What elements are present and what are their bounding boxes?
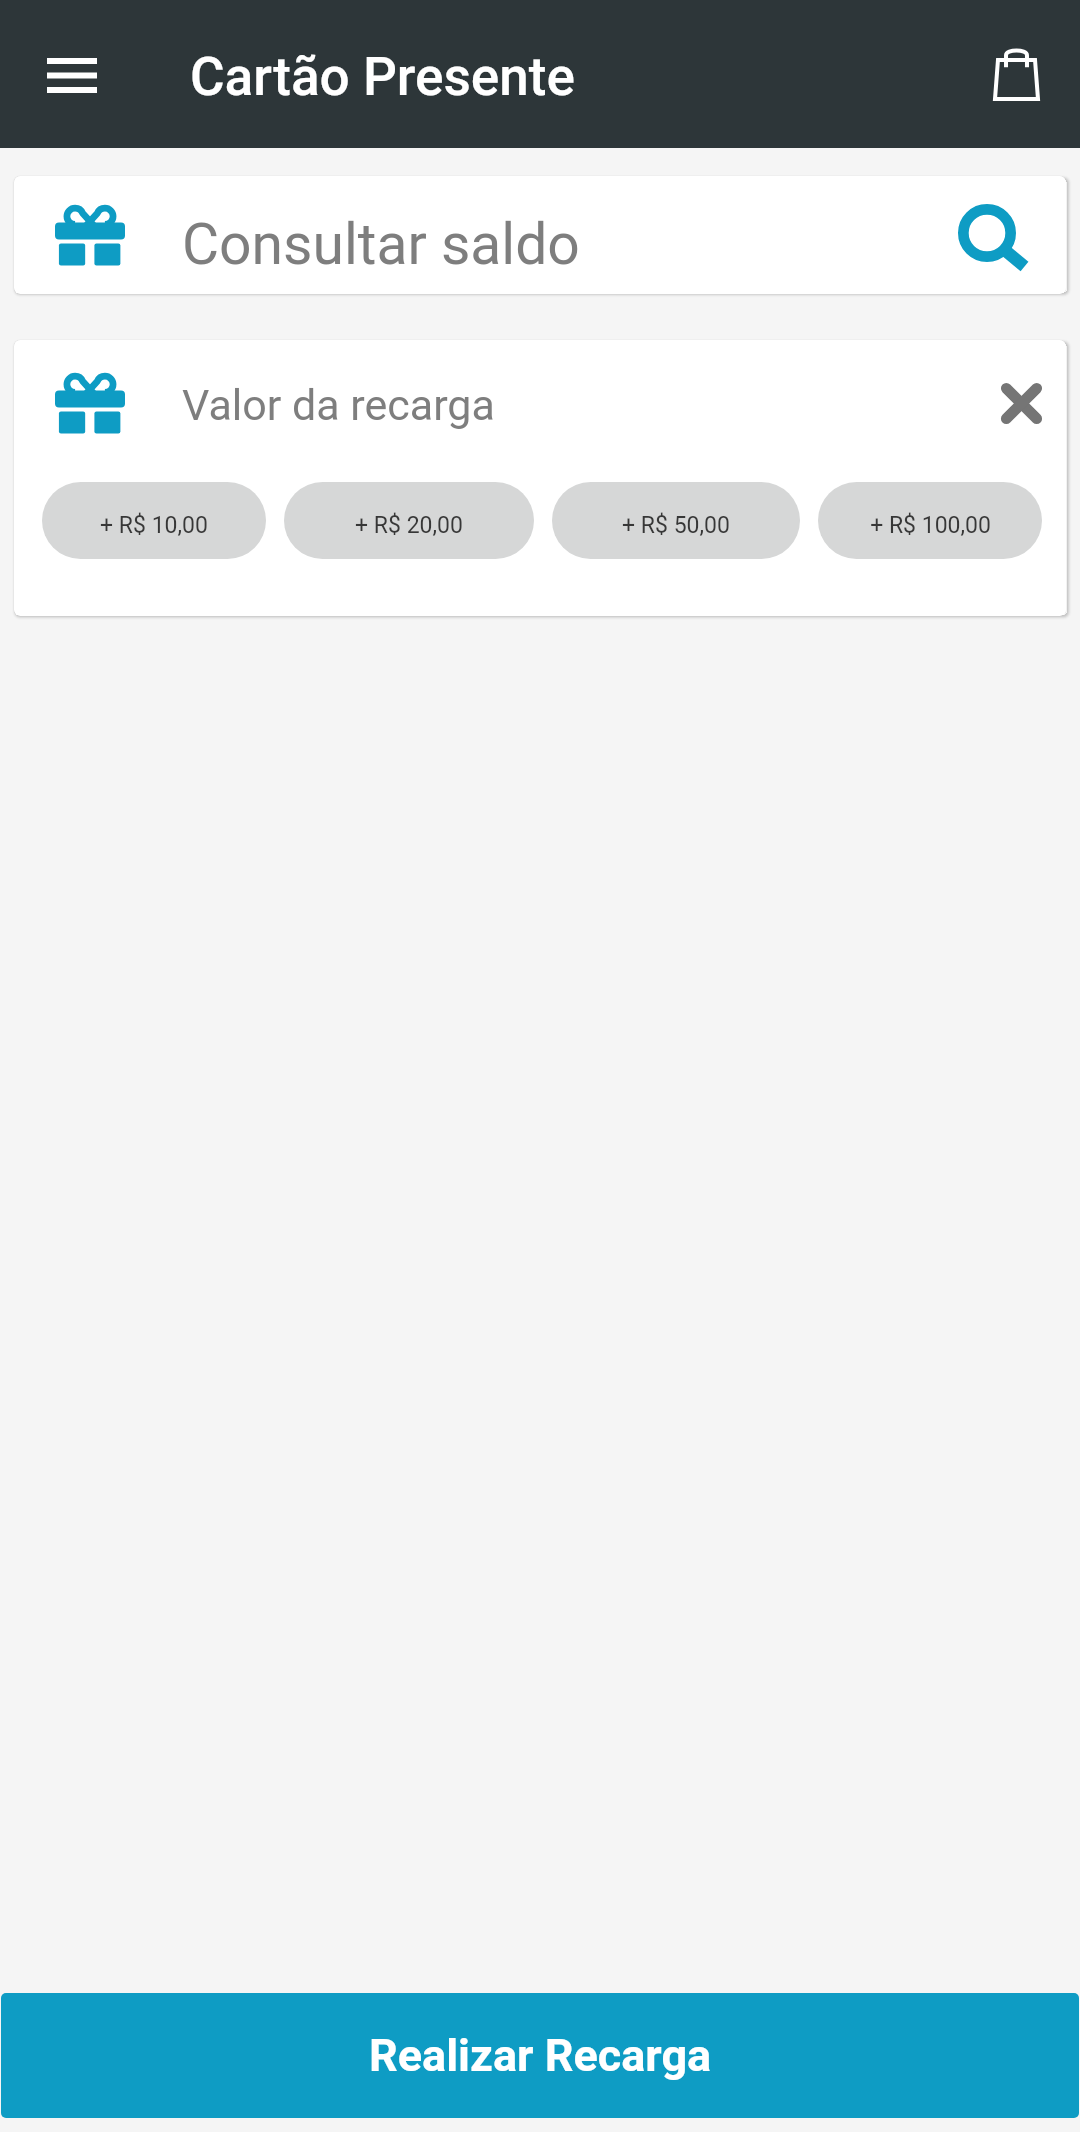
button[interactable]: Consultar saldo [14,176,1066,294]
button[interactable]: Realizar Recarga [1,1993,1079,2118]
staticText: Consultar saldo [182,211,580,278]
button[interactable]: Open navigation menu [24,26,120,122]
button[interactable]: + R$ 100,00 [818,482,1042,559]
button[interactable]: + R$ 10,00 [42,482,266,559]
button[interactable]: + R$ 50,00 [552,482,800,559]
staticText: Cartão Presente [190,46,575,108]
button[interactable]: Close [981,363,1061,443]
staticText: + R$ 10,00 [100,512,208,539]
staticText: + R$ 50,00 [622,512,730,539]
staticText: + R$ 100,00 [870,512,991,539]
staticText: Valor da recarga [182,380,495,430]
button[interactable]: Search [951,192,1037,278]
staticText: Realizar Recarga [369,2029,712,2082]
button[interactable]: + R$ 20,00 [284,482,534,559]
staticText: + R$ 20,00 [355,512,463,539]
button[interactable]: Shopping bag [968,26,1064,122]
